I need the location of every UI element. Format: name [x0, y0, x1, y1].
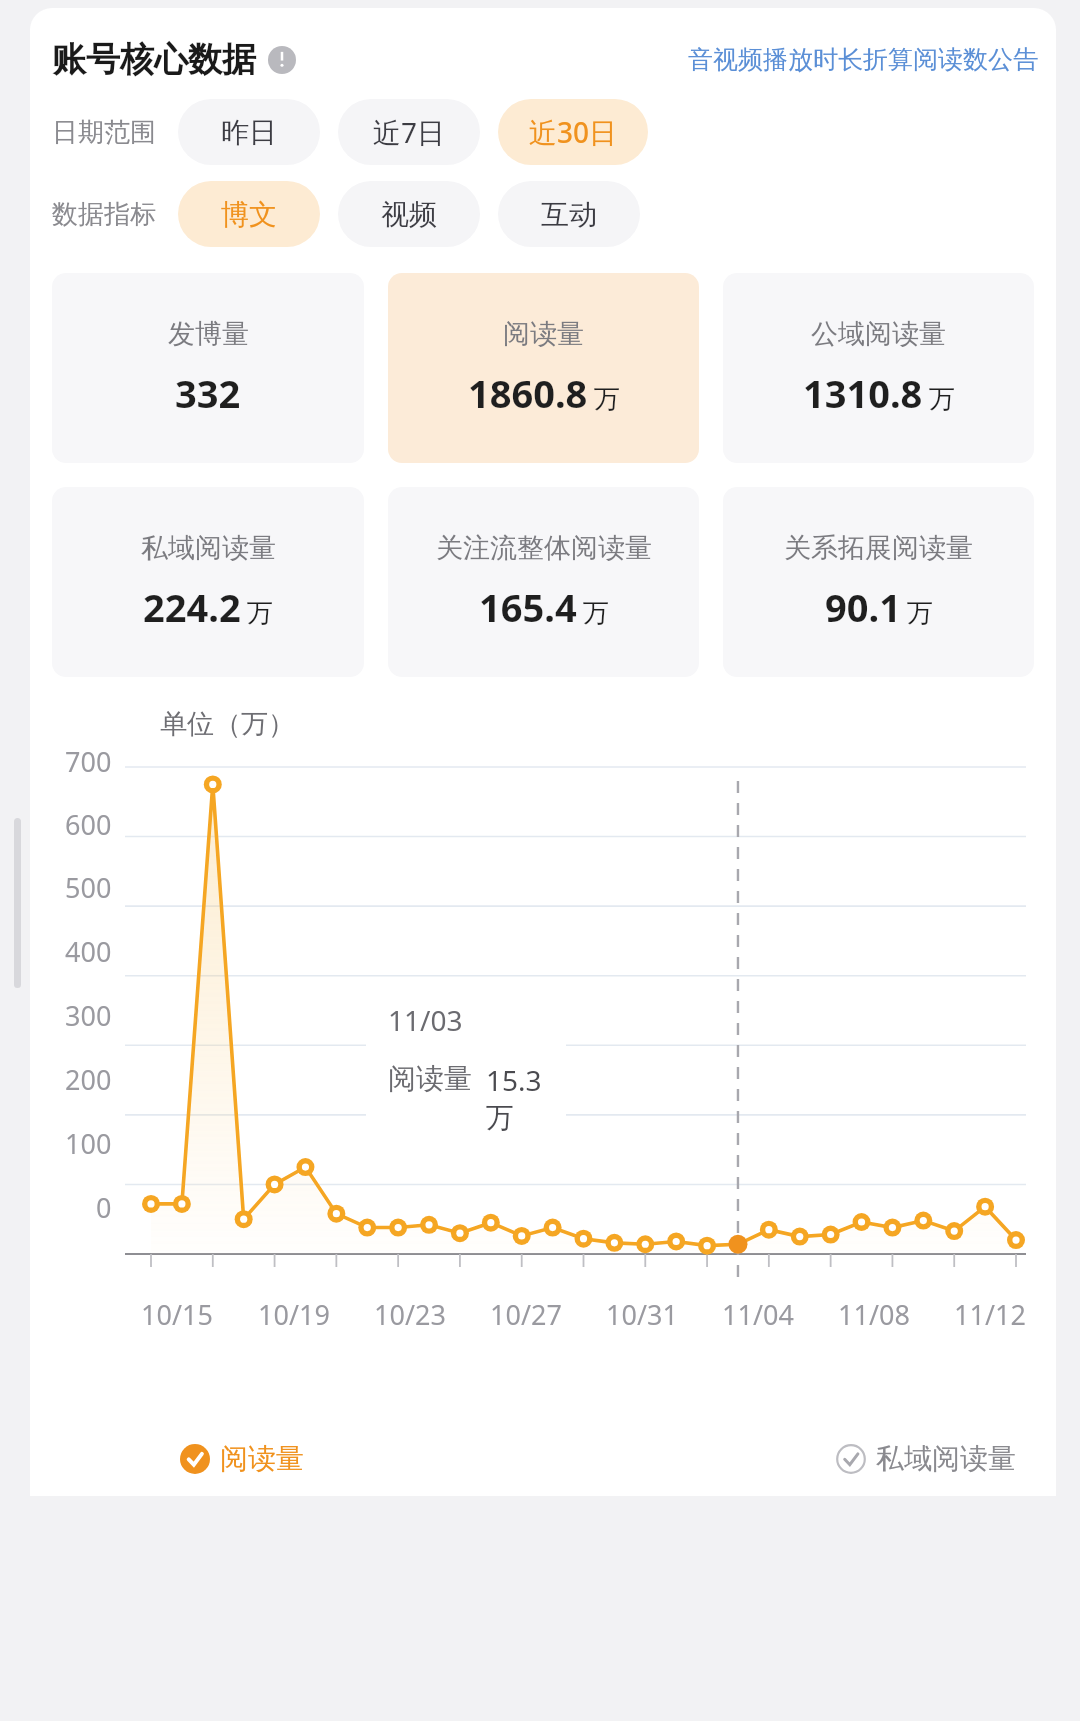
staticText: 关系拓展阅读量 [784, 531, 973, 565]
staticText: 阅读量 [388, 1061, 472, 1096]
staticText: 10/15 [141, 1296, 213, 1333]
staticText: 发博量 [168, 317, 249, 351]
staticText: 500 [65, 869, 112, 906]
staticText: 10/27 [490, 1296, 562, 1333]
staticText: 私域阅读量 [141, 531, 276, 565]
staticText: 关注流整体阅读量 [436, 531, 652, 565]
staticText: 10/31 [606, 1296, 678, 1333]
staticText: 互动 [541, 197, 597, 232]
staticText: 公域阅读量 [811, 317, 946, 351]
staticText: 近30日 [529, 113, 618, 151]
button[interactable]: 博文 [178, 181, 320, 247]
button[interactable]: 视频 [338, 181, 480, 247]
staticText: 700 [65, 743, 112, 780]
staticText: 日期范围 [52, 116, 156, 149]
staticText: 224.2 [143, 581, 241, 633]
staticText: 数据指标 [52, 198, 156, 231]
button[interactable]: 音视频播放时长折算阅读数公告 [688, 44, 1038, 75]
staticText: 10/19 [258, 1296, 330, 1333]
staticText: 90.1 [825, 581, 901, 633]
button[interactable]: 关注流整体阅读量 [388, 487, 699, 677]
staticText: 视频 [381, 197, 437, 232]
staticText: 万 [929, 383, 955, 416]
staticText: 11/08 [838, 1296, 910, 1333]
staticText: 10/23 [374, 1296, 446, 1333]
staticText: 1860.8 [468, 367, 588, 419]
button[interactable]: 阅读量 [180, 1441, 304, 1476]
staticText: 200 [65, 1061, 112, 1098]
button[interactable]: 发博量 [52, 273, 364, 463]
staticText: 11/03 [388, 1001, 463, 1039]
staticText: 音视频播放时长折算阅读数公告 [688, 44, 1038, 75]
staticText: 万 [583, 597, 609, 630]
staticText: 万 [247, 597, 273, 630]
staticText: 15.3万 [486, 1061, 566, 1136]
staticText: 332 [175, 367, 241, 419]
staticText: 400 [65, 933, 112, 970]
staticText: 私域阅读量 [876, 1441, 1016, 1476]
staticText: 单位（万） [160, 707, 295, 741]
staticText: 近7日 [373, 113, 446, 151]
staticText: 万 [594, 383, 620, 416]
button[interactable]: 昨日 [178, 99, 320, 165]
button[interactable]: 近30日 [498, 99, 648, 165]
staticText: 1310.8 [803, 367, 923, 419]
staticText: 100 [65, 1125, 112, 1162]
staticText: 600 [65, 806, 112, 843]
button[interactable]: 公域阅读量 [723, 273, 1034, 463]
button[interactable]: 关系拓展阅读量 [723, 487, 1034, 677]
staticText: 万 [907, 597, 933, 630]
staticText: 账号核心数据 [52, 38, 256, 81]
staticText: 165.4 [479, 581, 577, 633]
staticText: 11/04 [722, 1296, 794, 1333]
button[interactable]: 私域阅读量 [52, 487, 364, 677]
staticText: 昨日 [221, 115, 277, 150]
staticText: 300 [65, 997, 112, 1034]
button[interactable]: 互动 [498, 181, 640, 247]
button[interactable]: 私域阅读量 [836, 1441, 1016, 1476]
staticText: 博文 [221, 197, 277, 232]
staticText: 阅读量 [220, 1441, 304, 1476]
staticText: 阅读量 [503, 317, 584, 351]
staticText: 11/12 [954, 1296, 1026, 1333]
button[interactable]: 近7日 [338, 99, 480, 165]
button[interactable]: 说明 [268, 46, 296, 74]
button[interactable]: 阅读量 [388, 273, 699, 463]
staticText: 0 [96, 1189, 112, 1226]
